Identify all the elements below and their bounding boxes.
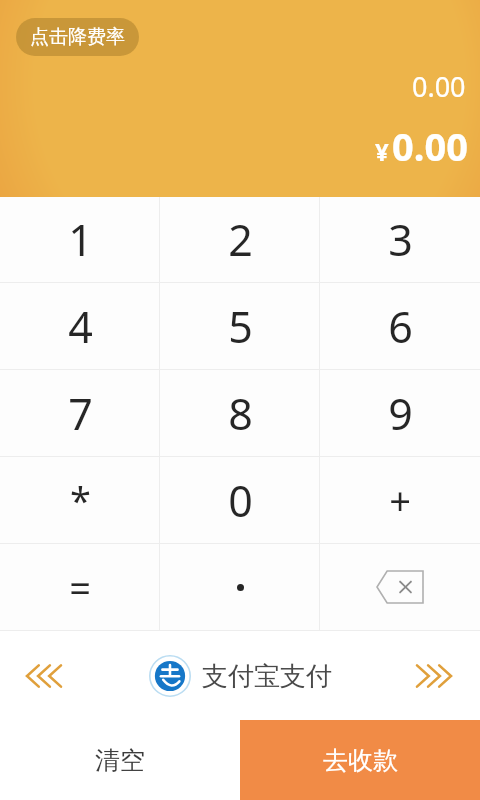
staticText: 9: [388, 384, 413, 443]
button[interactable]: 6: [320, 283, 480, 369]
staticText: ¥: [375, 135, 389, 168]
button[interactable]: 支付宝支付: [149, 655, 332, 697]
button[interactable]: 3: [320, 197, 480, 282]
button[interactable]: 0: [160, 457, 320, 543]
staticText: 0: [228, 471, 253, 530]
button[interactable]: 4: [0, 283, 160, 369]
button[interactable]: [160, 544, 320, 630]
staticText: 支付宝支付: [202, 660, 332, 693]
staticText: =: [69, 561, 91, 613]
staticText: 6: [388, 297, 413, 356]
staticText: +: [389, 474, 411, 526]
button[interactable]: Next payment method: [390, 631, 480, 720]
button[interactable]: *: [0, 457, 160, 543]
button[interactable]: 点击降费率: [16, 18, 139, 56]
button[interactable]: Previous payment method: [0, 631, 90, 720]
staticText: 0.00: [392, 120, 468, 172]
button[interactable]: 5: [160, 283, 320, 369]
button[interactable]: Backspace: [320, 544, 480, 630]
staticText: 清空: [95, 745, 145, 776]
button[interactable]: 去收款: [240, 720, 480, 800]
button[interactable]: +: [320, 457, 480, 543]
button[interactable]: =: [0, 544, 160, 630]
button[interactable]: 清空: [0, 720, 240, 800]
staticText: 5: [228, 297, 253, 356]
staticText: 1: [68, 210, 93, 269]
staticText: 点击降费率: [30, 25, 125, 49]
staticText: 2: [228, 210, 253, 269]
button[interactable]: 7: [0, 370, 160, 456]
staticText: 7: [68, 384, 93, 443]
staticText: *: [70, 474, 91, 526]
staticText: 8: [228, 384, 253, 443]
staticText: 去收款: [323, 745, 398, 776]
staticText: 0.00: [412, 68, 466, 105]
button[interactable]: 1: [0, 197, 160, 282]
staticText: 4: [68, 297, 93, 356]
button[interactable]: 9: [320, 370, 480, 456]
staticText: 3: [388, 210, 413, 269]
button[interactable]: 2: [160, 197, 320, 282]
button[interactable]: 8: [160, 370, 320, 456]
